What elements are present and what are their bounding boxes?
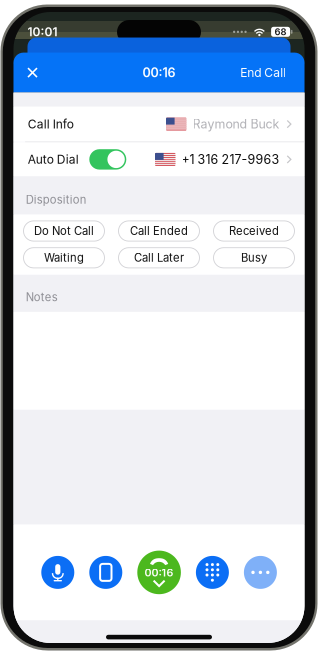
button[interactable]: Auto Dial: [13, 142, 304, 176]
staticText: Call Info: [28, 117, 74, 131]
staticText: 68: [275, 26, 287, 37]
button[interactable]: Device: [89, 556, 122, 589]
staticText: Notes: [26, 290, 58, 304]
button[interactable]: Busy: [213, 248, 294, 268]
button[interactable]: Waiting: [23, 248, 104, 268]
button[interactable]: Keypad: [196, 556, 229, 589]
staticText: 00:16: [145, 566, 174, 579]
button[interactable]: Call Info: [13, 107, 304, 142]
staticText: Call Ended: [130, 224, 188, 238]
staticText: Waiting: [44, 251, 84, 265]
button[interactable]: Close: [15, 53, 49, 93]
staticText: Get Full Access w all Features: [42, 45, 275, 65]
button[interactable]: Do Not Call: [23, 221, 104, 241]
staticText: 00:16: [142, 65, 175, 80]
button[interactable]: Call Later: [118, 248, 199, 268]
staticText: +1 316 217-9963: [181, 152, 279, 167]
button[interactable]: End Call: [240, 53, 286, 93]
staticText: Call Later: [134, 251, 184, 265]
button[interactable]: Call Ended: [118, 221, 199, 241]
button[interactable]: Received: [213, 221, 294, 241]
button[interactable]: Mute: [41, 556, 74, 589]
staticText: 10:01: [27, 25, 57, 39]
button[interactable]: End call: [137, 551, 181, 594]
staticText: Busy: [241, 251, 267, 265]
staticText: Received: [229, 224, 279, 238]
staticText: Auto Dial: [28, 152, 79, 167]
staticText: Raymond Buck: [192, 117, 279, 132]
staticText: Do Not Call: [34, 224, 94, 238]
staticText: Disposition: [26, 193, 87, 206]
staticText: End Call: [240, 65, 286, 80]
button[interactable]: More options: [244, 556, 277, 589]
